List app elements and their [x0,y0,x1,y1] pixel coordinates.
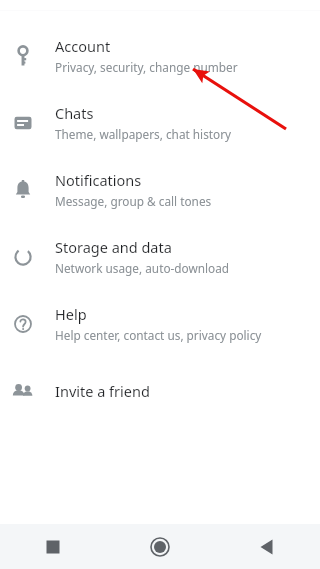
staticText: Privacy, security, change number [55,59,238,75]
staticText: Chats [55,103,94,123]
staticText: Help center, contact us, privacy policy [55,327,262,343]
button[interactable]: Chats [0,89,320,156]
staticText: Account [55,36,111,56]
button[interactable]: Back [213,524,320,569]
staticText: Message, group & call tones [55,193,212,209]
button[interactable]: Account [0,22,320,89]
staticText: Help [55,304,87,324]
button[interactable]: Recent apps [0,524,106,569]
staticText: Invite a friend [55,381,150,401]
button[interactable]: Help [0,290,320,357]
staticText: Notifications [55,170,142,190]
button[interactable]: Storage and data [0,223,320,290]
button[interactable]: Notifications [0,156,320,223]
button[interactable]: Home [106,524,213,569]
staticText: Storage and data [55,237,172,257]
button[interactable]: Invite a friend [0,357,320,424]
staticText: Network usage, auto-download [55,260,230,276]
staticText: Theme, wallpapers, chat history [55,126,232,142]
